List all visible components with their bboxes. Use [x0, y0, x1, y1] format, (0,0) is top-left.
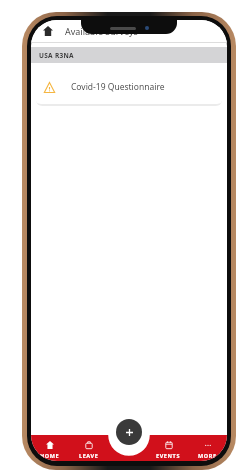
button[interactable]: Covid-19 Questionnaire	[35, 70, 223, 104]
staticText: MORE	[198, 452, 217, 459]
staticText: Available Surveys	[65, 25, 138, 37]
staticText: EVENTS	[156, 452, 181, 459]
button[interactable]: EVENTS	[149, 438, 188, 459]
button[interactable]: Home	[40, 23, 56, 39]
button[interactable]: LEAVE	[69, 438, 108, 459]
button[interactable]: MORE	[188, 438, 227, 459]
staticText: USA R3NA	[39, 51, 74, 60]
button[interactable]: Add	[116, 419, 142, 445]
button[interactable]: HOME	[31, 438, 69, 459]
staticText: Covid-19 Questionnaire	[71, 81, 165, 93]
staticText: LEAVE	[79, 452, 99, 459]
staticText: HOME	[40, 452, 60, 459]
